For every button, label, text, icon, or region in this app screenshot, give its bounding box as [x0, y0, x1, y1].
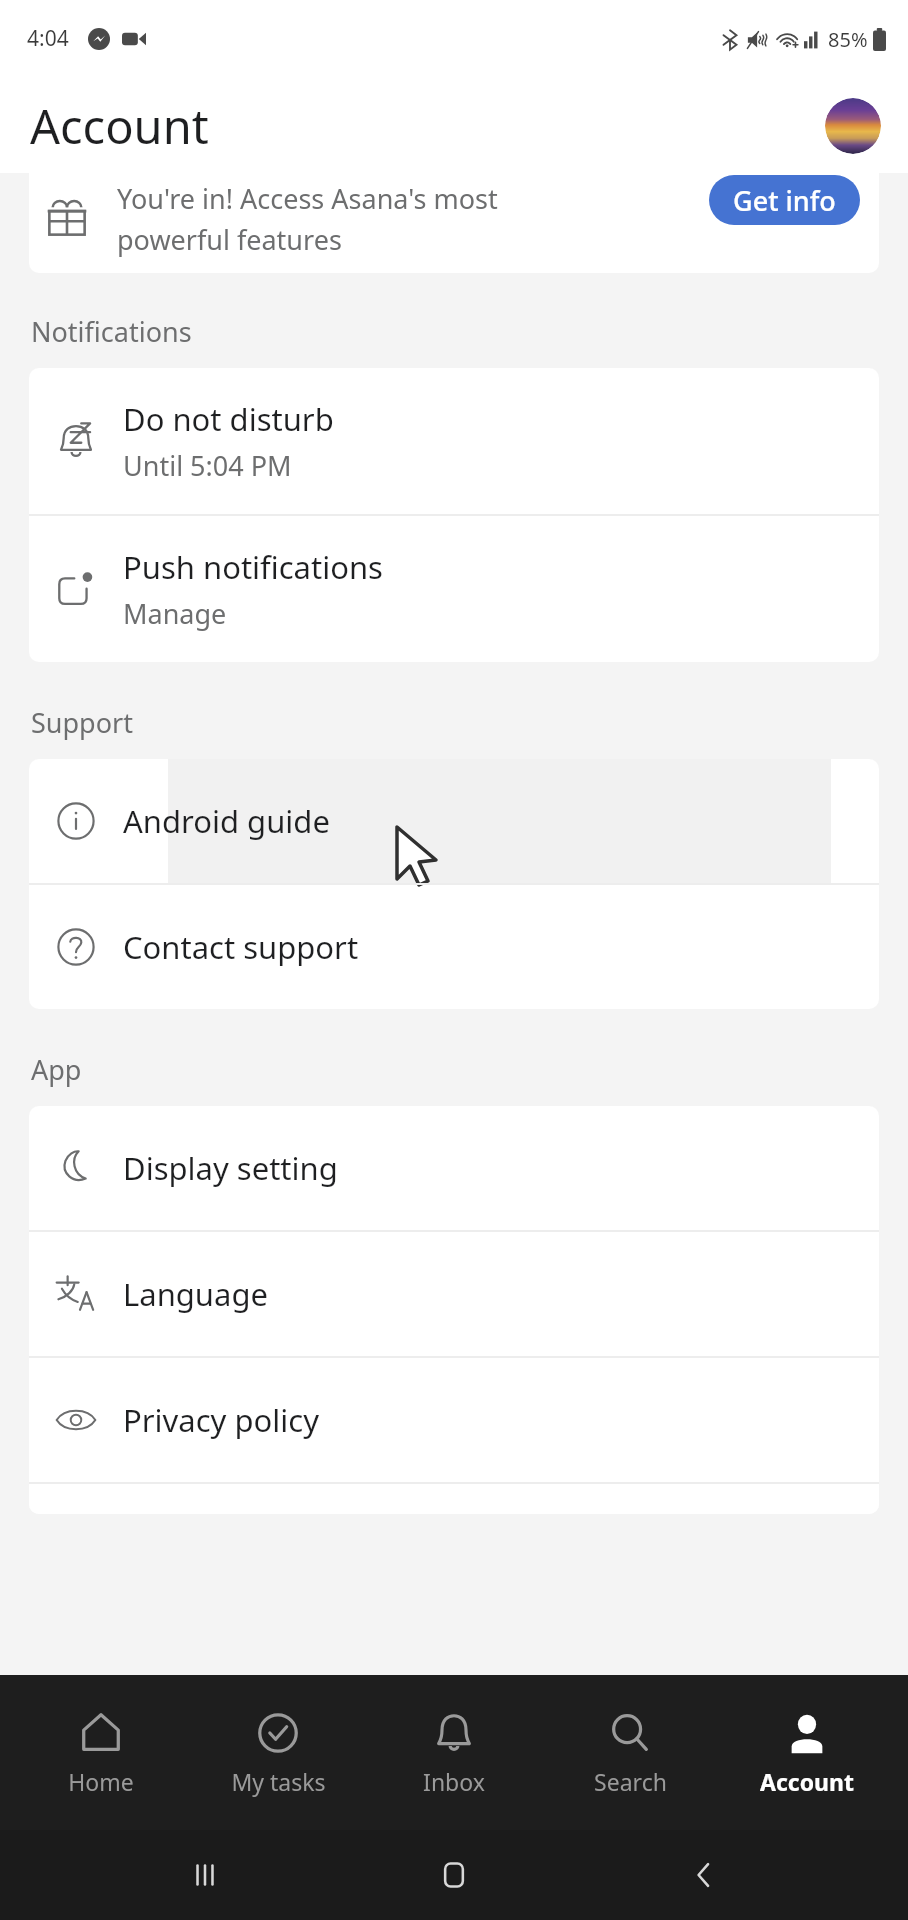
staticText: App: [31, 1051, 82, 1088]
button[interactable]: Do not disturb: [29, 368, 879, 514]
button[interactable]: My tasks: [203, 1675, 353, 1830]
staticText: Android guide: [123, 800, 330, 842]
staticText: Account: [30, 94, 209, 158]
staticText: 4:04: [27, 24, 69, 53]
staticText: Push notifications: [123, 546, 383, 588]
staticText: Home: [68, 1766, 134, 1797]
button[interactable]: Recents: [160, 1830, 250, 1920]
staticText: 85%: [828, 26, 868, 53]
staticText: Account: [760, 1766, 854, 1797]
staticText: Do not disturb: [123, 398, 334, 440]
button[interactable]: Language: [29, 1232, 879, 1356]
staticText: You're in! Access Asana's most: [117, 180, 498, 217]
button[interactable]: Android guide: [29, 759, 879, 883]
button[interactable]: Back: [659, 1830, 749, 1920]
button[interactable]: Privacy policy: [29, 1358, 879, 1482]
staticText: Privacy policy: [123, 1399, 319, 1441]
button[interactable]: Home: [409, 1830, 499, 1920]
staticText: Support: [31, 704, 133, 741]
button[interactable]: Profile: [825, 98, 881, 154]
staticText: Manage: [123, 595, 227, 632]
button[interactable]: Contact support: [29, 885, 879, 1009]
staticText: powerful features: [117, 221, 342, 258]
button[interactable]: Display setting: [29, 1106, 879, 1230]
staticText: Notifications: [31, 313, 192, 350]
staticText: Until 5:04 PM: [123, 447, 292, 484]
staticText: Get info: [733, 182, 836, 219]
staticText: Display setting: [123, 1147, 338, 1189]
button[interactable]: Account: [732, 1675, 882, 1830]
button[interactable]: Push notifications: [29, 516, 879, 662]
button[interactable]: Home: [26, 1675, 176, 1830]
button[interactable]: Search: [555, 1675, 705, 1830]
staticText: Language: [123, 1273, 268, 1315]
staticText: Contact support: [123, 926, 359, 968]
button[interactable]: You're in! Access Asana's most: [29, 173, 879, 273]
staticText: Inbox: [423, 1766, 485, 1797]
button[interactable]: Inbox: [379, 1675, 529, 1830]
staticText: My tasks: [231, 1766, 326, 1797]
staticText: Search: [594, 1766, 667, 1797]
button[interactable]: Get info: [709, 175, 860, 225]
